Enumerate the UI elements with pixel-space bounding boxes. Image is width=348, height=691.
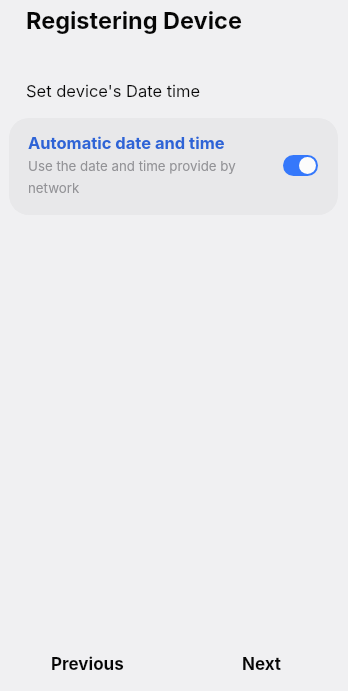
staticText: Set device's Date time [26,81,201,101]
staticText: Use the date and time provide by network [28,158,243,196]
staticText: Registering Device [26,6,242,34]
staticText: Next [242,654,282,675]
button[interactable]: Previous [36,644,139,685]
staticText: Previous [51,654,124,675]
staticText: Automatic date and time [28,133,225,153]
button[interactable]: Automatic date and time [283,155,318,176]
button[interactable]: Next [227,644,297,685]
button[interactable]: Automatic date and time [9,118,338,215]
